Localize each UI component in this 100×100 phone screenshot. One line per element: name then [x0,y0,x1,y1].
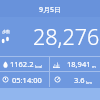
staticText: km [86,80,92,85]
staticText: 1162.2 [10,59,34,69]
button[interactable]: Speed [50,72,100,87]
staticText: 歩数 [2,29,10,34]
staticText: kcal [35,64,43,69]
button[interactable]: Calories [0,57,49,71]
staticText: 28,276 [33,22,100,51]
staticText: 05:14:00 [12,75,42,85]
button[interactable]: Duration [0,72,49,87]
staticText: 3.6 [74,75,85,85]
button[interactable]: 9月5日 [0,0,100,17]
staticText: 18,941 [67,59,91,69]
button[interactable]: Distance [50,57,100,71]
staticText: m [92,64,96,69]
staticText: 9月5日 [39,5,62,15]
